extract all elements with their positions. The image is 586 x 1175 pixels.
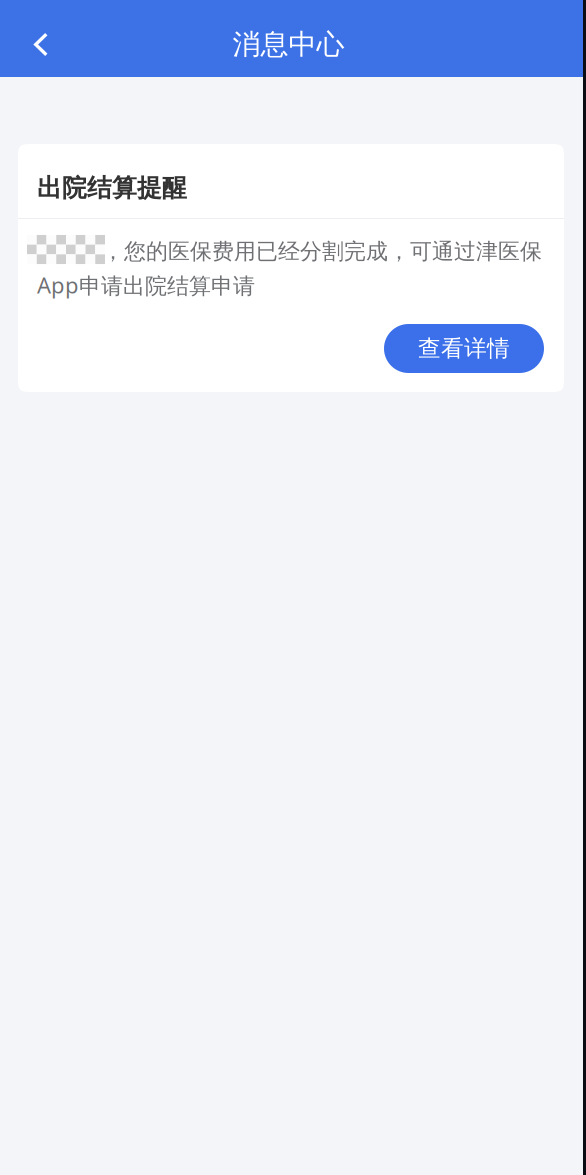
staticText: 出院结算提醒 <box>37 172 187 204</box>
button[interactable]: 查看详情 <box>384 324 544 373</box>
staticText: 消息中心 <box>232 27 344 62</box>
staticText: ，您的医保费用已经分割完成，可通过津医保 <box>102 238 542 265</box>
staticText: App申请出院结算申请 <box>37 270 255 300</box>
staticText: 查看详情 <box>418 334 510 363</box>
button[interactable]: Back <box>34 16 90 72</box>
